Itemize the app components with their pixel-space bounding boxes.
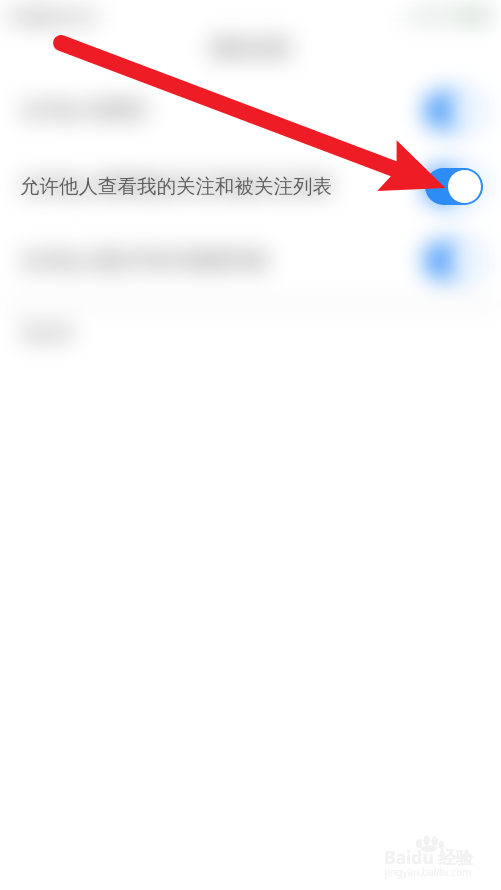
button[interactable]: 允许他人查看我的关注和被关注列表 — [0, 149, 501, 224]
button[interactable]: Toggle — [425, 92, 483, 129]
staticText: 允许他人查看我的关注和被关注列表 — [20, 174, 332, 199]
staticText: jingyan.baidu.com — [385, 865, 472, 879]
staticText: 隐私设置 — [211, 36, 291, 61]
staticText: 允许他人查看我的关注和被关注列表 — [20, 173, 332, 198]
button[interactable]: 允许他人通过手机号搜索到我 — [0, 223, 501, 298]
staticText: 黑名单 — [22, 323, 73, 344]
staticText: 中国移动10:2 — [7, 6, 97, 26]
button[interactable]: 允许他人查看我的关注和被关注列表 — [0, 148, 501, 223]
button[interactable]: Toggle — [425, 168, 483, 205]
staticText: 允许他人查看我 — [20, 99, 146, 122]
staticText: 允许他人通过手机号搜索到我 — [20, 249, 267, 273]
button[interactable]: Toggle — [425, 242, 483, 279]
button[interactable]: 允许他人查看我 — [0, 73, 501, 148]
button[interactable]: Toggle — [425, 167, 483, 204]
staticText: Baidu 经验 — [384, 845, 474, 869]
